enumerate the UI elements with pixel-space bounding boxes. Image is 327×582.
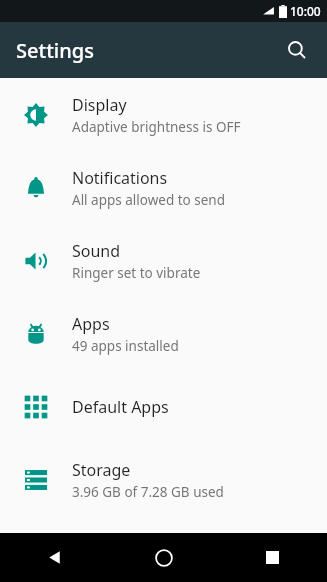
staticText: Default Apps [72,396,169,418]
staticText: Sound [72,240,121,262]
button[interactable]: Storage [0,443,327,516]
staticText: Adaptive brightness is OFF [72,118,241,136]
staticText: 10:00 [290,3,321,19]
button[interactable]: Apps [0,297,327,370]
button[interactable]: Home [109,533,218,582]
staticText: Display [72,94,127,116]
button[interactable]: Default Apps [0,370,327,443]
staticText: Apps [72,313,110,335]
button[interactable]: Search [275,28,319,72]
staticText: 3.96 GB of 7.28 GB used [72,483,224,501]
staticText: All apps allowed to send [72,191,226,209]
button[interactable]: Notifications [0,151,327,224]
button[interactable]: Display [0,78,327,151]
staticText: Ringer set to vibrate [72,264,201,282]
staticText: Storage [72,459,131,481]
button[interactable]: Sound [0,224,327,297]
button[interactable]: Recent apps [218,533,327,582]
staticText: Notifications [72,167,168,189]
staticText: Settings [16,37,94,64]
button[interactable]: Back [0,533,109,582]
staticText: 49 apps installed [72,337,179,355]
